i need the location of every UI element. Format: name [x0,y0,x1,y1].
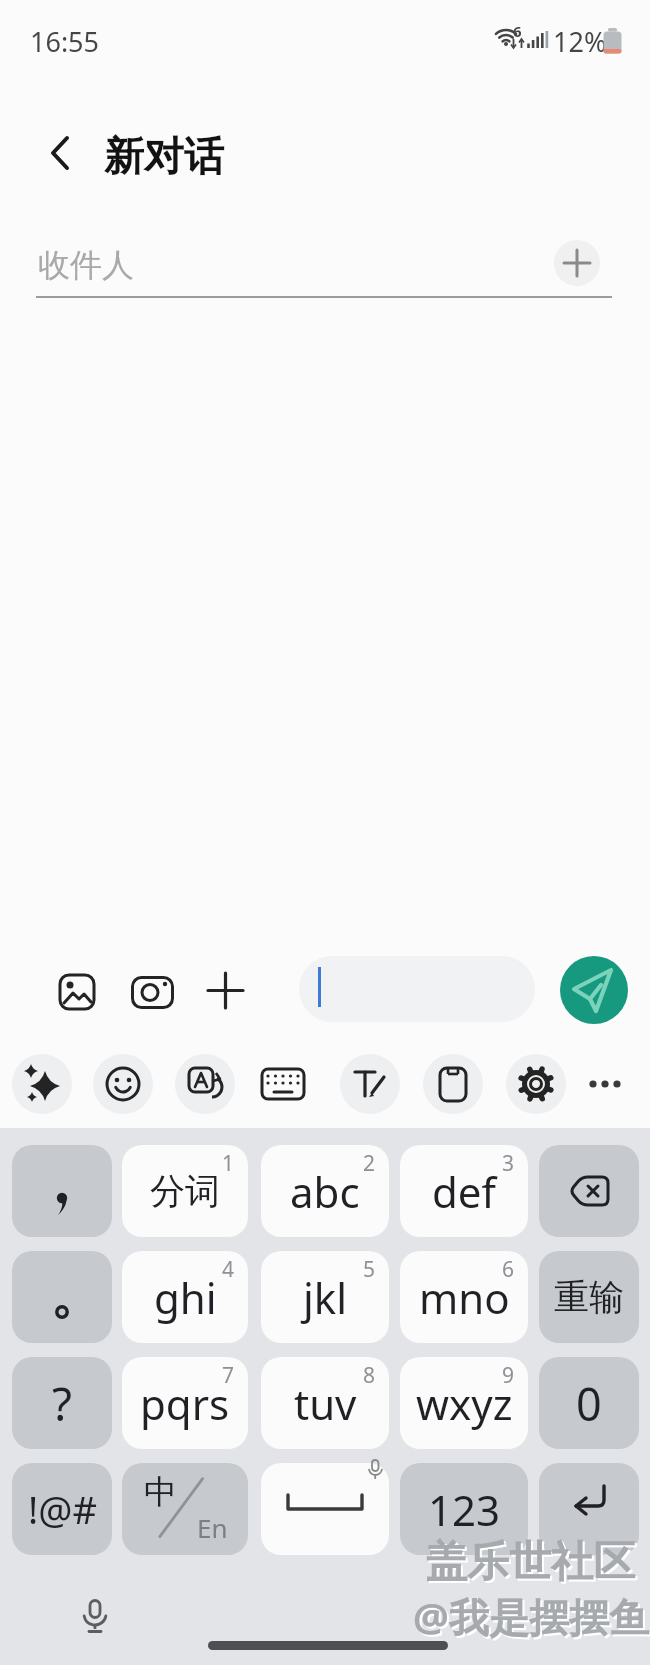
staticText: En [197,1510,228,1545]
staticText: 5 [363,1255,376,1284]
staticText: jkl [303,1269,348,1326]
staticText: abc [290,1163,360,1220]
staticText: wxyz [416,1375,513,1432]
staticText: 1 [222,1149,235,1178]
staticText: 盖乐世社区 [427,1538,637,1591]
staticText: 9 [502,1361,515,1390]
staticText: 盖乐世社区 [425,1536,635,1589]
staticText: 7 [222,1361,235,1390]
staticText: ? [52,1372,72,1435]
staticText: @我是摆摆鱼 [415,1591,650,1646]
staticText: !@# [28,1483,97,1535]
staticText: @我是摆摆鱼 [413,1589,649,1644]
staticText: def [432,1163,496,1220]
staticText: 6 [513,21,522,41]
staticText: pqrs [140,1375,230,1432]
staticText: 16:55 [30,23,100,60]
staticText: 0 [576,1373,602,1434]
staticText: tuv [294,1375,357,1432]
staticText: 6 [502,1255,515,1284]
staticText: 123 [428,1481,501,1538]
staticText: 中 [144,1471,177,1513]
staticText: 收件人 [38,245,134,285]
staticText: 3 [502,1149,515,1178]
staticText: 新对话 [104,131,224,181]
staticText: 分词 [150,1169,220,1213]
staticText: 12% [553,23,607,60]
staticText: 2 [363,1149,376,1178]
staticText: 4 [222,1255,235,1284]
staticText: mno [419,1269,510,1326]
staticText: 8 [363,1361,376,1390]
staticText: 重输 [554,1275,624,1319]
staticText: ghi [154,1269,217,1326]
